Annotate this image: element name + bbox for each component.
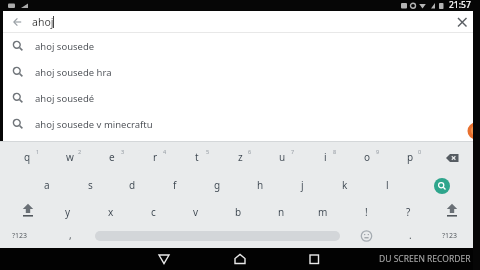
staticText: m xyxy=(318,205,328,219)
button[interactable] xyxy=(228,250,252,268)
staticText: 8 xyxy=(333,148,337,155)
staticText: t xyxy=(195,150,199,164)
button[interactable]: r xyxy=(133,147,177,167)
button[interactable]: s xyxy=(68,175,112,195)
button[interactable]: j xyxy=(280,175,324,195)
staticText: 0 xyxy=(418,148,422,155)
staticText: q xyxy=(24,150,31,164)
button[interactable]: e xyxy=(90,147,134,167)
button[interactable]: ? xyxy=(386,202,430,222)
staticText: d xyxy=(129,178,136,192)
staticText: s xyxy=(88,178,93,192)
staticText: 21:57 xyxy=(449,0,471,11)
staticText: o xyxy=(364,150,371,164)
staticText: 7 xyxy=(291,148,295,155)
button[interactable] xyxy=(302,250,326,268)
staticText: 2 xyxy=(78,148,82,155)
button[interactable]: h xyxy=(238,175,282,195)
button[interactable]: o xyxy=(345,147,389,167)
button[interactable]: f xyxy=(153,175,197,195)
staticText: 1 xyxy=(36,148,40,155)
button[interactable]: ahoj sousede xyxy=(3,33,473,59)
staticText: 9 xyxy=(376,148,380,155)
button[interactable]: ?123 xyxy=(3,226,37,246)
staticText: ! xyxy=(365,205,368,219)
staticText: x xyxy=(108,205,114,219)
staticText: g xyxy=(214,178,221,192)
staticText: h xyxy=(257,178,264,192)
button[interactable] xyxy=(8,12,28,32)
staticText: 6 xyxy=(248,148,252,155)
button[interactable]: n xyxy=(259,202,303,222)
button[interactable]: . xyxy=(388,225,432,245)
button[interactable]: m xyxy=(301,202,345,222)
staticText: ?123 xyxy=(12,231,28,241)
staticText: u xyxy=(279,150,286,164)
button[interactable]: ahoj sousedé xyxy=(3,85,473,111)
staticText: e xyxy=(109,150,115,164)
button[interactable]: c xyxy=(131,202,175,222)
button[interactable]: ! xyxy=(344,202,388,222)
staticText: w xyxy=(66,150,74,164)
button[interactable]: i xyxy=(303,147,347,167)
button[interactable]: z xyxy=(218,147,262,167)
staticText: v xyxy=(193,205,199,219)
staticText: r xyxy=(153,150,158,164)
staticText: ahoj sousedé xyxy=(35,92,95,105)
staticText: j xyxy=(301,178,304,192)
staticText: y xyxy=(65,205,71,219)
button[interactable]: w xyxy=(48,147,92,167)
staticText: ?123 xyxy=(442,231,458,241)
staticText: n xyxy=(278,205,285,219)
button[interactable]: x xyxy=(89,202,133,222)
button[interactable] xyxy=(439,148,465,168)
staticText: , xyxy=(69,228,72,242)
button[interactable]: t xyxy=(175,147,219,167)
staticText: ? xyxy=(406,205,411,219)
button[interactable]: q xyxy=(5,147,49,167)
staticText: ahoj xyxy=(32,15,54,29)
staticText: 3 xyxy=(121,148,125,155)
button[interactable]: y xyxy=(46,202,90,222)
staticText: DU SCREEN RECORDER xyxy=(379,253,471,265)
button[interactable]: g xyxy=(195,175,239,195)
staticText: k xyxy=(342,178,348,192)
button[interactable]: d xyxy=(110,175,154,195)
button[interactable] xyxy=(452,12,473,32)
button[interactable] xyxy=(17,200,39,220)
button[interactable] xyxy=(356,226,377,246)
button[interactable]: v xyxy=(174,202,218,222)
staticText: ahoj sousede xyxy=(35,40,95,53)
button[interactable] xyxy=(434,178,450,194)
staticText: ahoj sousede hra xyxy=(35,66,112,79)
button[interactable]: ?123 xyxy=(433,226,467,246)
staticText: ahoj sousede v minecraftu xyxy=(35,118,153,131)
staticText: 4 xyxy=(163,148,167,155)
button[interactable]: l xyxy=(365,175,409,195)
staticText: 5 xyxy=(206,148,210,155)
button[interactable] xyxy=(441,200,463,220)
staticText: l xyxy=(386,178,389,192)
button[interactable]: k xyxy=(323,175,367,195)
button[interactable]: b xyxy=(216,202,260,222)
staticText: . xyxy=(409,228,412,242)
button[interactable]: p xyxy=(388,147,432,167)
button[interactable] xyxy=(152,250,176,268)
staticText: i xyxy=(324,150,327,164)
staticText: b xyxy=(235,205,242,219)
button[interactable]: ahoj sousede hra xyxy=(3,59,473,85)
button[interactable]: ahoj sousede v minecraftu xyxy=(3,111,473,137)
staticText: z xyxy=(238,150,243,164)
staticText: f xyxy=(173,178,177,192)
staticText: a xyxy=(44,178,50,192)
button[interactable]: u xyxy=(260,147,304,167)
button[interactable]: , xyxy=(48,225,92,245)
button[interactable]: a xyxy=(25,175,69,195)
staticText: p xyxy=(407,150,414,164)
staticText: c xyxy=(151,205,156,219)
